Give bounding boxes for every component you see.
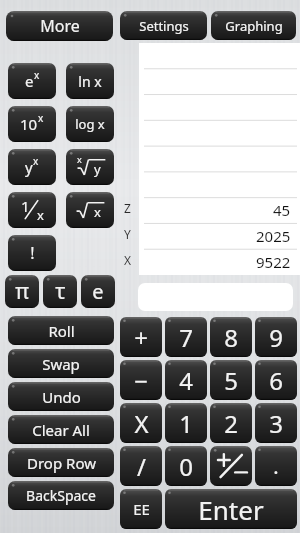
- button[interactable]: Swap: [8, 349, 114, 378]
- button[interactable]: 6: [255, 360, 297, 400]
- staticText: Roll: [48, 321, 75, 341]
- staticText: 3: [269, 407, 283, 440]
- staticText: Enter: [198, 492, 264, 527]
- button[interactable]: 7: [165, 317, 207, 357]
- button[interactable]: plus: [120, 317, 162, 357]
- staticText: 7: [179, 321, 193, 354]
- staticText: x: [33, 154, 39, 168]
- button[interactable]: factorial: [8, 235, 56, 271]
- staticText: .: [273, 453, 279, 480]
- staticText: 2025: [256, 226, 291, 246]
- staticText: Z: [124, 200, 131, 216]
- button[interactable]: multiply: [120, 403, 162, 443]
- staticText: BackSpace: [26, 486, 96, 505]
- staticText: ln x: [78, 72, 102, 91]
- staticText: X: [134, 407, 149, 440]
- staticText: 1: [21, 196, 30, 216]
- staticText: 9522: [256, 252, 291, 272]
- button[interactable]: BackSpace: [8, 481, 114, 510]
- staticText: Swap: [42, 354, 80, 374]
- staticText: x: [77, 153, 82, 165]
- staticText: 1: [179, 407, 193, 440]
- button[interactable]: 5: [210, 360, 252, 400]
- staticText: e: [92, 278, 104, 305]
- staticText: y: [94, 160, 101, 178]
- staticText: 8: [224, 321, 238, 354]
- button[interactable]: pi: [5, 275, 39, 308]
- button[interactable]: one over x: [8, 192, 56, 228]
- staticText: Graphing: [225, 17, 283, 35]
- staticText: X: [124, 252, 132, 268]
- button[interactable]: 3: [255, 403, 297, 443]
- staticText: y: [25, 157, 33, 177]
- staticText: 5: [224, 364, 238, 397]
- staticText: Clear All: [32, 420, 90, 440]
- staticText: More: [40, 15, 80, 37]
- button[interactable]: decimal point: [255, 446, 297, 486]
- staticText: x: [37, 206, 44, 224]
- staticText: +: [134, 321, 148, 354]
- button[interactable]: divide: [120, 446, 162, 486]
- staticText: 10: [20, 114, 38, 134]
- button[interactable]: ln x: [66, 63, 114, 99]
- button[interactable]: Clear All: [8, 415, 114, 444]
- button[interactable]: Euler's number e: [81, 275, 115, 308]
- button[interactable]: 9: [255, 317, 297, 357]
- button[interactable]: 2: [210, 403, 252, 443]
- button[interactable]: y to the power of x: [8, 149, 56, 185]
- staticText: τ: [55, 277, 66, 306]
- button[interactable]: e to the power of x: [8, 63, 56, 99]
- staticText: x: [34, 68, 40, 82]
- staticText: Y: [124, 226, 131, 242]
- staticText: x: [94, 203, 101, 221]
- button[interactable]: Enter: [165, 489, 297, 529]
- staticText: !: [30, 242, 35, 264]
- staticText: e: [25, 71, 34, 91]
- staticText: EE: [133, 499, 150, 519]
- button[interactable]: 10 to the power of x: [8, 106, 56, 142]
- staticText: π: [15, 277, 29, 306]
- button[interactable]: plus or minus sign change: [210, 446, 252, 486]
- button[interactable]: Drop Row: [8, 448, 114, 477]
- staticText: 4: [179, 364, 193, 397]
- staticText: 6: [269, 364, 283, 397]
- staticText: Undo: [42, 387, 81, 407]
- staticText: 45: [273, 200, 291, 220]
- button[interactable]: More: [6, 11, 113, 41]
- staticText: 2: [224, 407, 238, 440]
- staticText: Settings: [139, 17, 189, 35]
- button[interactable]: 8: [210, 317, 252, 357]
- staticText: /: [137, 450, 146, 483]
- button[interactable]: minus: [120, 360, 162, 400]
- staticText: 9: [269, 321, 283, 354]
- button[interactable]: Settings: [120, 11, 207, 40]
- button[interactable]: log x: [66, 106, 114, 142]
- button[interactable]: tau: [43, 275, 77, 308]
- button[interactable]: exponent: [120, 489, 162, 529]
- staticText: 0: [179, 450, 193, 483]
- button[interactable]: 1: [165, 403, 207, 443]
- button[interactable]: x root of y: [66, 149, 114, 185]
- button[interactable]: 4: [165, 360, 207, 400]
- staticText: −: [134, 364, 148, 397]
- button[interactable]: Roll: [8, 316, 114, 345]
- staticText: log x: [75, 115, 105, 133]
- button[interactable]: Undo: [8, 382, 114, 411]
- staticText: x: [38, 111, 44, 125]
- button[interactable]: Graphing: [211, 11, 296, 40]
- staticText: Drop Row: [27, 453, 96, 473]
- button[interactable]: 0: [165, 446, 207, 486]
- button[interactable]: square root of x: [66, 192, 114, 228]
